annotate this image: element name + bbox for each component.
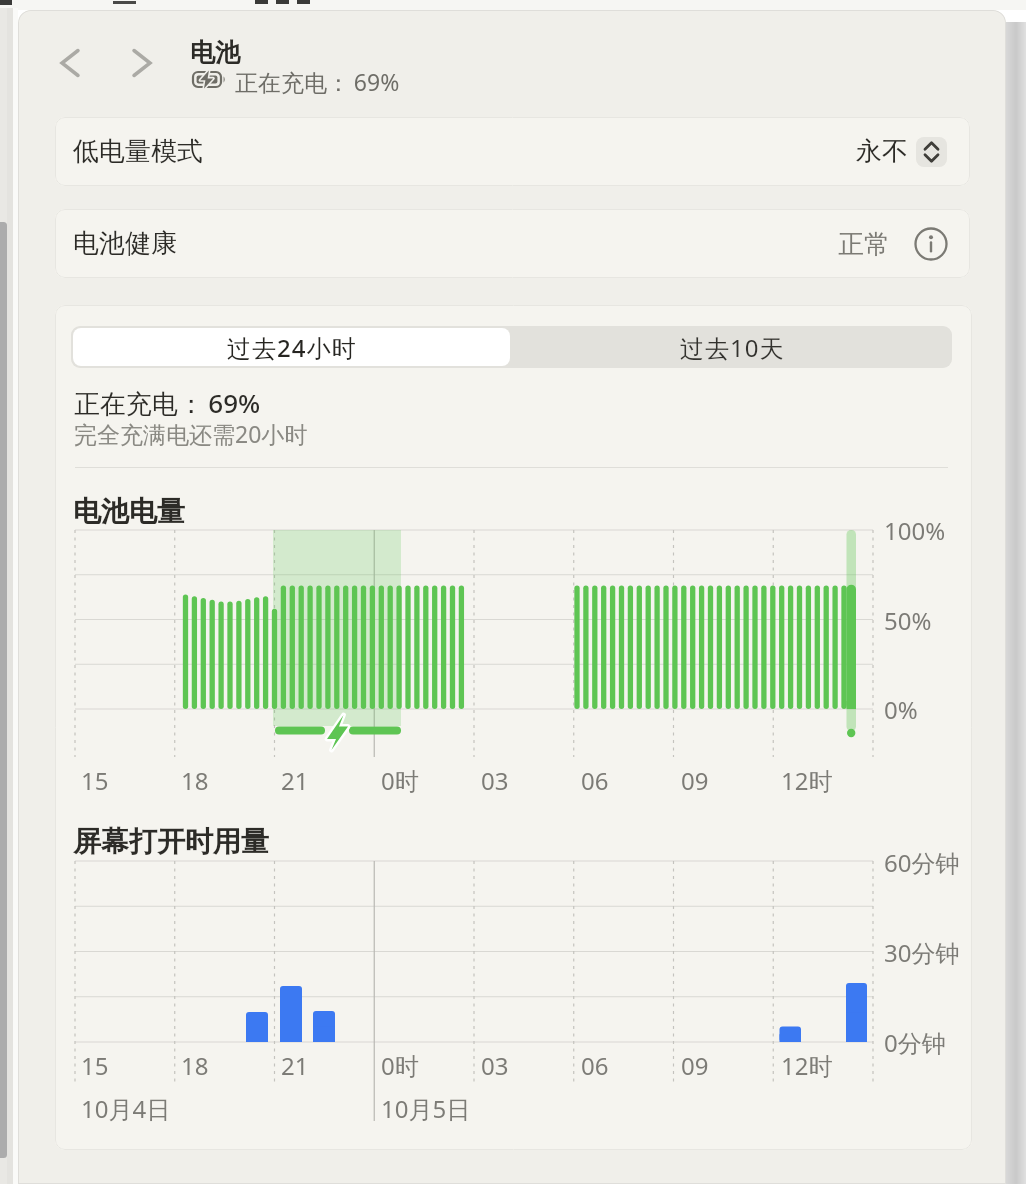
- staticText: 正常: [838, 228, 890, 261]
- staticText: 18: [181, 1049, 209, 1082]
- staticText: 永不: [856, 135, 908, 168]
- staticText: 21: [281, 1049, 309, 1082]
- staticText: 12时: [781, 1049, 833, 1082]
- staticText: 正在充电： 69%: [235, 66, 400, 97]
- staticText: 03: [481, 1049, 509, 1082]
- staticText: 09: [681, 764, 709, 797]
- staticText: 过去10天: [680, 331, 785, 364]
- staticText: 完全充满电还需20小时: [74, 418, 308, 449]
- button[interactable]: 低电量模式: [55, 117, 970, 186]
- staticText: 过去24小时: [227, 331, 357, 364]
- staticText: 06: [581, 1049, 609, 1082]
- staticText: 屏幕打开时用量: [73, 824, 269, 859]
- staticText: 10月5日: [381, 1092, 471, 1125]
- staticText: 0%: [884, 693, 918, 726]
- button[interactable]: [916, 137, 947, 167]
- staticText: 21: [281, 764, 309, 797]
- staticText: 18: [181, 764, 209, 797]
- staticText: 0分钟: [884, 1026, 946, 1059]
- button[interactable]: [48, 43, 168, 93]
- staticText: 15: [81, 764, 109, 797]
- staticText: 0时: [381, 764, 419, 797]
- staticText: 30分钟: [884, 936, 960, 969]
- staticText: 03: [481, 764, 509, 797]
- staticText: 15: [81, 1049, 109, 1082]
- button[interactable]: 过去24小时: [73, 328, 510, 366]
- staticText: 100%: [884, 514, 946, 547]
- staticText: 60分钟: [884, 846, 960, 879]
- staticText: 12时: [781, 764, 833, 797]
- staticText: 电池电量: [73, 494, 185, 529]
- staticText: 电池健康: [73, 227, 177, 260]
- button[interactable]: 过去10天: [512, 326, 952, 368]
- staticText: 低电量模式: [73, 135, 203, 168]
- staticText: 正在充电： 69%: [74, 385, 261, 421]
- staticText: 10月4日: [81, 1092, 171, 1125]
- staticText: 09: [681, 1049, 709, 1082]
- staticText: 50%: [884, 604, 932, 637]
- staticText: 06: [581, 764, 609, 797]
- staticText: 电池: [190, 37, 240, 68]
- button[interactable]: [914, 227, 948, 261]
- staticText: 0时: [381, 1049, 419, 1082]
- button[interactable]: 电池健康: [55, 209, 970, 278]
